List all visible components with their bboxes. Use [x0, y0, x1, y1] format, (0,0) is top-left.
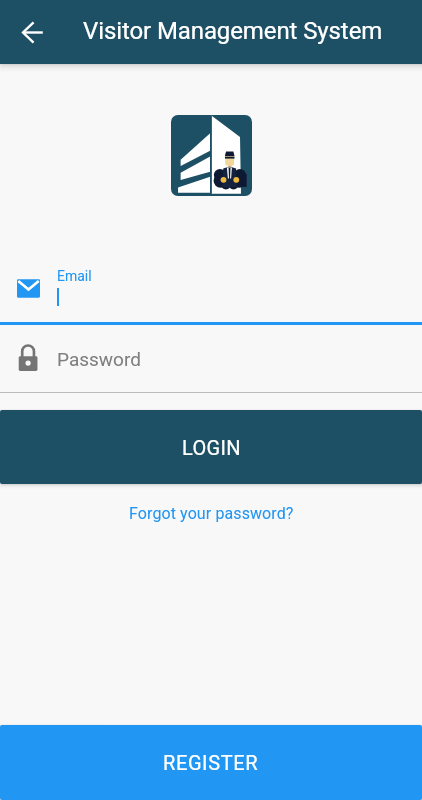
button[interactable]: REGISTER [0, 725, 422, 800]
button[interactable]: Back [0, 0, 83, 64]
staticText: REGISTER [163, 751, 259, 774]
button[interactable]: Forgot your password? [0, 498, 422, 528]
staticText: Email [57, 268, 92, 284]
staticText: LOGIN [182, 436, 241, 459]
staticText: Password [57, 348, 141, 370]
staticText: Visitor Management System [83, 17, 383, 45]
staticText: Forgot your password? [129, 504, 294, 523]
button[interactable]: LOGIN [0, 410, 422, 484]
